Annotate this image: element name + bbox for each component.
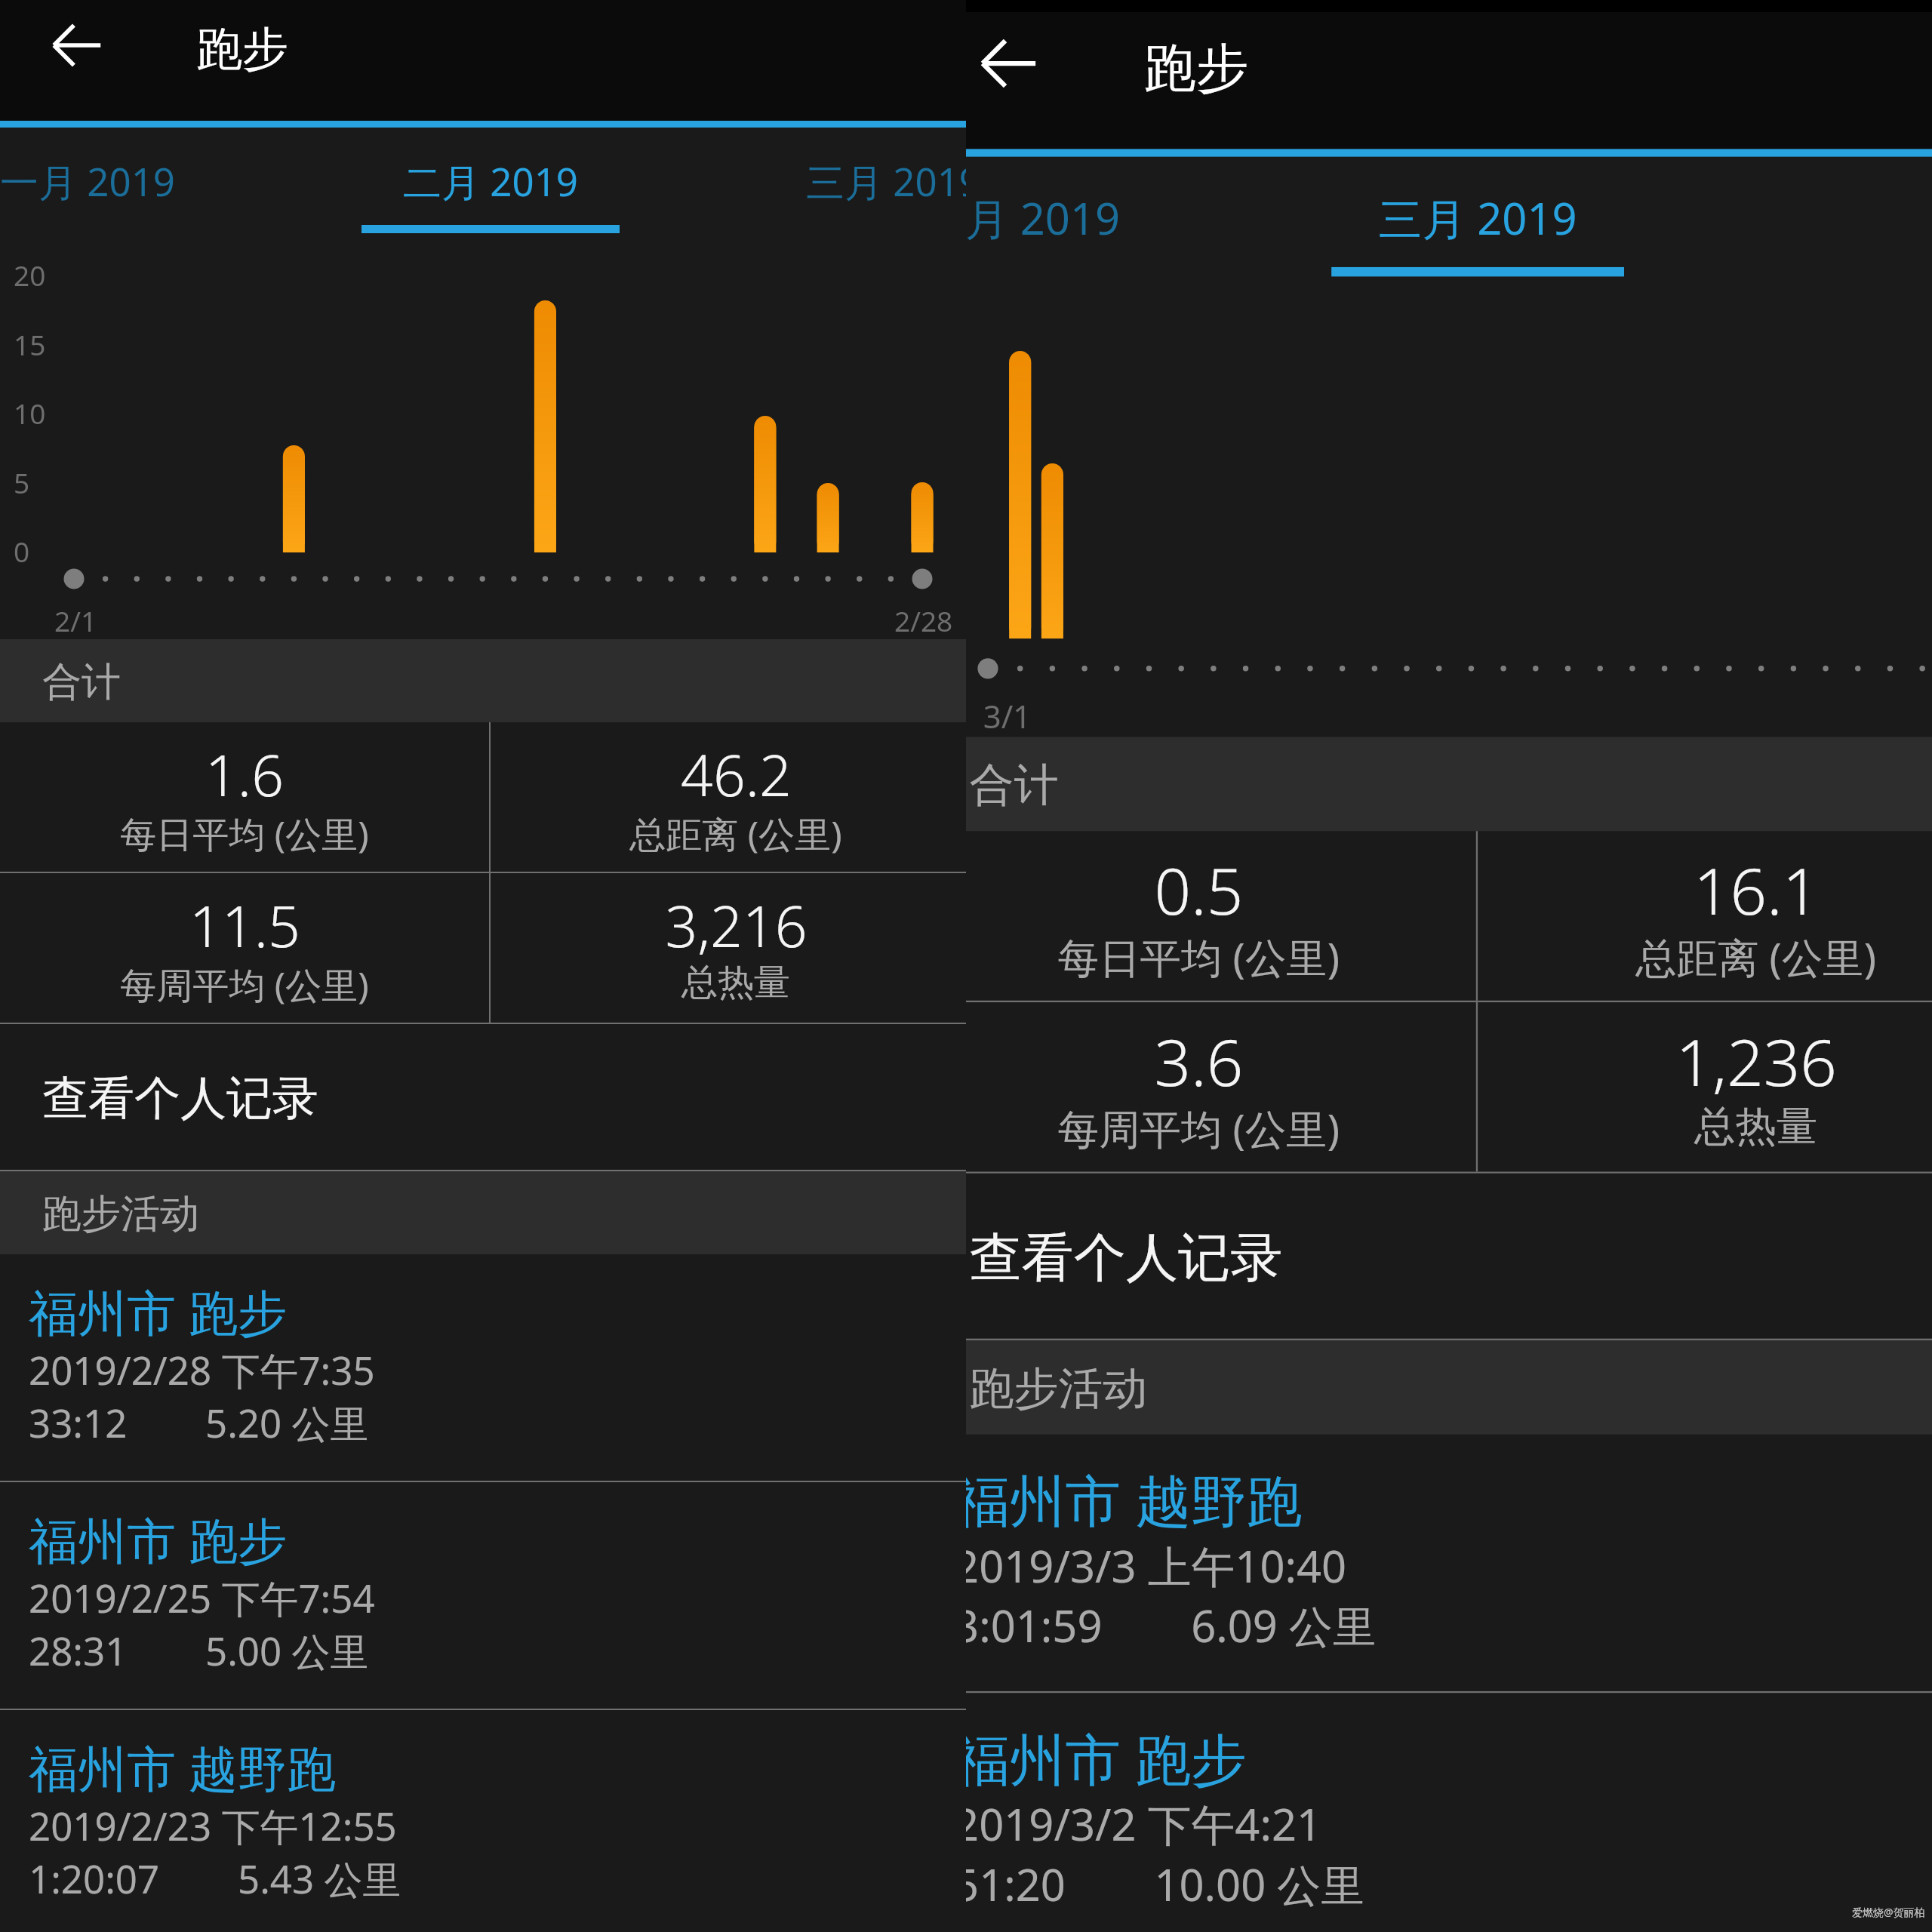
staticText: 46.2 — [681, 736, 792, 813]
staticText: 20 — [14, 256, 46, 294]
staticText: 2/1 — [54, 601, 97, 639]
staticText: 11.5 — [189, 887, 300, 964]
button[interactable]: 福州市 跑步 — [966, 1693, 1932, 1932]
staticText: 2019/2/28 下午7:35 — [29, 1343, 375, 1396]
button[interactable]: 福州市 越野跑 — [0, 1710, 966, 1932]
staticText: 福州市 越野跑 — [966, 1462, 1302, 1538]
button[interactable]: Back — [980, 34, 1038, 93]
button[interactable]: 1.6 — [0, 722, 489, 872]
button[interactable]: 福州市 跑步 — [0, 1482, 966, 1709]
staticText: 2019/2/25 下午7:54 — [29, 1571, 375, 1624]
button[interactable]: 0.5 — [966, 831, 1476, 1000]
button[interactable]: Back — [51, 20, 103, 71]
button[interactable]: 二月 2019 — [289, 155, 692, 208]
staticText: 总热量 — [681, 960, 790, 1005]
staticText: 每周平均 (公里) — [120, 960, 369, 1010]
button[interactable]: 3,216 — [491, 873, 966, 1023]
staticText: 3:01:59 — [966, 1595, 1103, 1654]
staticText: 每日平均 (公里) — [1058, 929, 1340, 986]
staticText: 5 — [14, 463, 30, 501]
staticText: 查看个人记录 — [969, 1225, 1283, 1291]
staticText: 跑步活动 — [42, 1189, 199, 1239]
staticText: 51:20 — [966, 1854, 1066, 1913]
staticText: 跑步 — [196, 20, 288, 78]
button[interactable]: 1,236 — [1478, 1002, 1932, 1172]
staticText: 福州市 跑步 — [29, 1506, 287, 1574]
staticText: 福州市 跑步 — [29, 1278, 287, 1346]
staticText: 6.09 公里 — [1191, 1595, 1377, 1655]
staticText: 合计 — [969, 757, 1058, 814]
button[interactable]: 11.5 — [0, 873, 489, 1023]
button[interactable]: 三月 2019 — [1249, 188, 1706, 247]
button[interactable]: 福州市 越野跑 — [966, 1434, 1932, 1691]
staticText: 总距离 (公里) — [1635, 929, 1877, 986]
staticText: 5.20 公里 — [205, 1396, 369, 1449]
button[interactable]: 查看个人记录 — [966, 1173, 1932, 1339]
staticText: 三月 2019 — [1379, 188, 1577, 247]
staticText: 1,236 — [1675, 1018, 1837, 1105]
button[interactable]: 3.6 — [966, 1002, 1476, 1172]
staticText: 每日平均 (公里) — [120, 809, 369, 859]
staticText: 10 — [14, 394, 46, 432]
staticText: 28:31 — [29, 1624, 128, 1676]
staticText: 2019/2/23 下午12:55 — [29, 1799, 397, 1852]
staticText: 跑步 — [1144, 35, 1248, 101]
staticText: 合计 — [42, 657, 121, 707]
button[interactable]: 三月 2019 — [692, 155, 966, 208]
staticText: 一月 2019 — [0, 155, 175, 208]
staticText: 二月 2019 — [966, 188, 1120, 247]
staticText: 1:20:07 — [29, 1852, 160, 1904]
staticText: 3/1 — [983, 694, 1032, 737]
staticText: 福州市 越野跑 — [29, 1734, 336, 1801]
staticText: 2019/3/2 下午4:21 — [966, 1794, 1322, 1854]
staticText: 2019/3/3 上午10:40 — [966, 1535, 1347, 1595]
staticText: 5.00 公里 — [205, 1624, 369, 1677]
staticText: 0.5 — [1154, 846, 1243, 934]
staticText: 查看个人记录 — [42, 1069, 318, 1128]
staticText: 0 — [14, 532, 30, 570]
staticText: 福州市 跑步 — [966, 1720, 1247, 1796]
staticText: 3,216 — [665, 887, 808, 964]
staticText: 5.43 公里 — [238, 1852, 401, 1905]
staticText: 16.1 — [1693, 846, 1819, 934]
staticText: 二月 2019 — [403, 155, 578, 208]
button[interactable]: 福州市 跑步 — [0, 1254, 966, 1481]
button[interactable]: 16.1 — [1478, 831, 1932, 1000]
staticText: 跑步活动 — [969, 1361, 1147, 1417]
button[interactable]: 查看个人记录 — [0, 1024, 966, 1170]
button[interactable]: 一月 2019 — [0, 155, 289, 208]
button[interactable]: 46.2 — [491, 722, 966, 872]
staticText: 33:12 — [29, 1396, 128, 1448]
button[interactable]: 二月 2019 — [966, 188, 1249, 247]
staticText: 2/28 — [894, 601, 953, 639]
staticText: 10.00 公里 — [1154, 1854, 1365, 1914]
staticText: 15 — [14, 325, 46, 363]
staticText: 三月 2019 — [806, 155, 966, 208]
staticText: 总距离 (公里) — [629, 809, 842, 859]
staticText: 1.6 — [205, 736, 284, 813]
staticText: 总热量 — [1694, 1101, 1818, 1152]
staticText: 爱燃烧@贺丽柏 — [1852, 1905, 1925, 1919]
staticText: 3.6 — [1154, 1018, 1243, 1105]
staticText: 每周平均 (公里) — [1058, 1101, 1340, 1157]
